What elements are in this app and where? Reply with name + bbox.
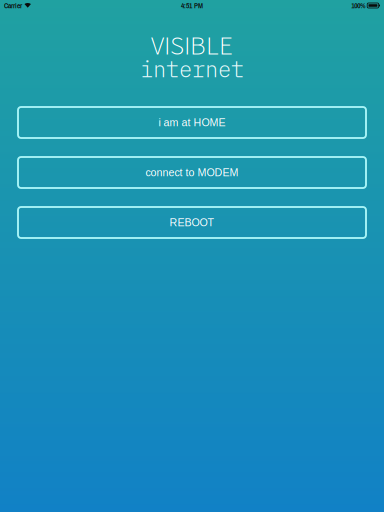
staticText: i am at HOME bbox=[158, 116, 225, 128]
staticText: internet bbox=[140, 55, 244, 83]
button[interactable]: connect to MODEM bbox=[18, 157, 366, 188]
staticText: connect to MODEM bbox=[145, 166, 238, 178]
staticText: Carrier bbox=[4, 1, 22, 10]
staticText: 100% bbox=[351, 1, 365, 10]
staticText: 4:51 PM bbox=[181, 1, 203, 10]
button[interactable]: i am at HOME bbox=[18, 107, 366, 138]
staticText: VISIBLE bbox=[151, 27, 233, 65]
button[interactable]: REBOOT bbox=[18, 207, 366, 238]
staticText: REBOOT bbox=[169, 216, 214, 228]
